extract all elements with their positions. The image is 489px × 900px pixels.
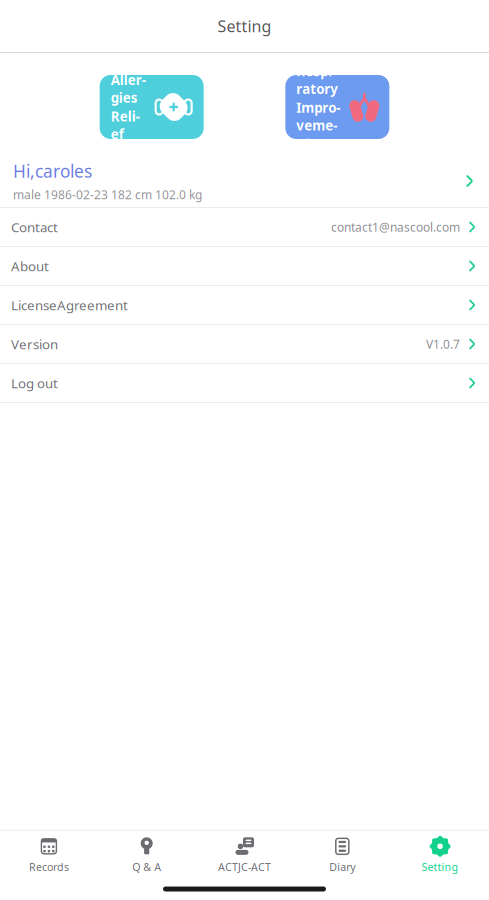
button[interactable]: Allergies [100,75,204,139]
button[interactable]: Hi,caroles [0,155,489,207]
staticText: V1.0.7 [426,336,460,352]
button[interactable]: Diary [293,831,391,878]
staticText: About [11,257,49,275]
staticText: male 1986-02-23 182 cm 102.0 kg [13,186,202,202]
staticText: Log out [11,374,58,392]
button[interactable]: Respiratory [285,75,389,139]
button[interactable]: Contact [0,208,489,246]
staticText: Version [11,335,58,353]
button[interactable]: Records [0,831,98,878]
staticText: ACTJC-ACT [218,860,271,874]
button[interactable]: Q & A [98,831,196,878]
staticText: Respiratory [296,62,338,98]
staticText: LicenseAgreement [11,296,128,314]
staticText: Diary [329,860,355,874]
button[interactable]: LicenseAgreement [0,286,489,324]
button[interactable]: Log out [0,364,489,402]
staticText: Setting [217,15,271,37]
staticText: Hi,caroles [13,159,92,182]
staticText: Relief [111,107,140,143]
button[interactable]: ACTJC-ACT [196,831,293,878]
staticText: Setting [422,860,459,874]
staticText: Allergies [111,71,146,106]
staticText: Improvement [296,99,340,152]
button[interactable]: About [0,247,489,285]
staticText: Q & A [132,860,161,874]
staticText: Records [29,860,69,874]
staticText: contact1@nascool.com [331,219,460,235]
button[interactable]: Setting [391,831,489,878]
button[interactable]: Version [0,325,489,363]
staticText: Contact [11,218,58,236]
